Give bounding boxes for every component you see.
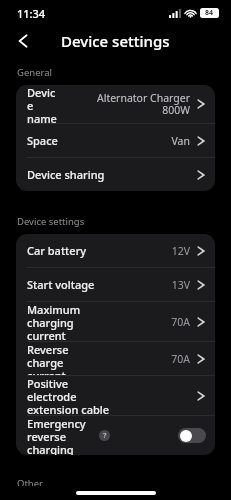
- button[interactable]: Emergency reverse charging: [16, 416, 215, 455]
- button[interactable]: Back: [8, 26, 38, 56]
- staticText: Alternator Charger 800W: [96, 91, 190, 117]
- staticText: Space: [27, 133, 99, 148]
- button[interactable]: Start voltage: [16, 268, 215, 301]
- button[interactable]: Space: [16, 124, 215, 157]
- staticText: Device settings: [61, 31, 170, 51]
- staticText: Device sharing: [27, 167, 111, 182]
- staticText: Maximum charging current: [27, 302, 99, 341]
- button[interactable]: Car battery: [16, 234, 215, 267]
- staticText: ?: [103, 431, 107, 441]
- staticText: Van: [171, 134, 190, 148]
- button[interactable]: Reverse charge current: [16, 342, 215, 375]
- staticText: Device settings: [17, 215, 85, 228]
- staticText: 12V: [171, 244, 190, 258]
- button[interactable]: Help: [99, 430, 110, 441]
- staticText: Reverse charge current: [27, 342, 99, 375]
- staticText: Other: [17, 477, 44, 486]
- staticText: 11:34: [17, 6, 46, 21]
- staticText: 13V: [171, 278, 190, 292]
- staticText: 70A: [171, 352, 190, 366]
- staticText: 70A: [171, 315, 190, 329]
- button[interactable]: Positive electrode extension cable: [16, 376, 215, 415]
- staticText: Emergency reverse charging: [27, 416, 94, 455]
- staticText: Device name: [27, 85, 61, 123]
- staticText: Start voltage: [27, 277, 99, 292]
- button[interactable]: Emergency reverse charging toggle: [178, 428, 206, 443]
- staticText: General: [17, 66, 53, 79]
- button[interactable]: Device name: [16, 85, 215, 123]
- button[interactable]: Device sharing: [16, 158, 215, 191]
- button[interactable]: Maximum charging current: [16, 302, 215, 341]
- staticText: 84: [205, 8, 214, 18]
- staticText: Positive electrode extension cable: [27, 376, 111, 415]
- staticText: Car battery: [27, 243, 99, 258]
